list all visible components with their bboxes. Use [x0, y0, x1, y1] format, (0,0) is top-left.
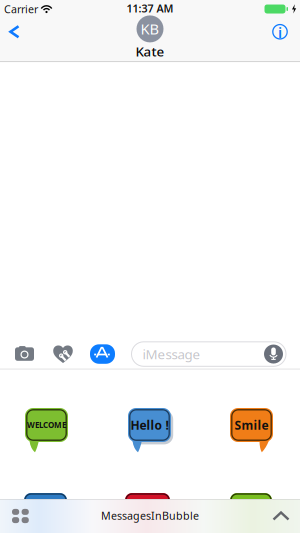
button[interactable]: iMessage apps: [73, 344, 115, 364]
staticText: Kate: [135, 42, 164, 60]
staticText: i: [278, 22, 282, 42]
button[interactable]: Sticker: [67, 493, 170, 507]
button[interactable]: KB: [120, 17, 180, 58]
staticText: WELCOME: [27, 420, 66, 430]
button[interactable]: Hello !: [68, 408, 171, 455]
staticText: KB: [140, 19, 159, 39]
staticText: MessagesInBubble: [101, 508, 199, 523]
button[interactable]: WELCOME: [0, 408, 68, 455]
button[interactable]: Sticker: [0, 493, 67, 507]
button[interactable]: Back: [0, 25, 20, 39]
button[interactable]: Record audio: [264, 344, 286, 363]
button[interactable]: Expand: [272, 511, 300, 521]
staticText: Smile: [234, 417, 268, 433]
staticText: Hello !: [130, 417, 168, 433]
button[interactable]: MessagesInBubble: [101, 509, 199, 523]
staticText: 11:37 AM: [126, 1, 173, 15]
button[interactable]: Sticker apps: [0, 509, 29, 523]
button[interactable]: Camera: [0, 345, 34, 363]
button[interactable]: iMessage text field: [115, 342, 300, 366]
button[interactable]: Details: [272, 24, 300, 40]
button[interactable]: Smile: [171, 408, 273, 455]
button[interactable]: Digital Touch: [34, 345, 73, 363]
staticText: iMessage: [142, 345, 200, 363]
button[interactable]: Sticker: [170, 493, 272, 507]
staticText: Carrier: [4, 2, 38, 16]
